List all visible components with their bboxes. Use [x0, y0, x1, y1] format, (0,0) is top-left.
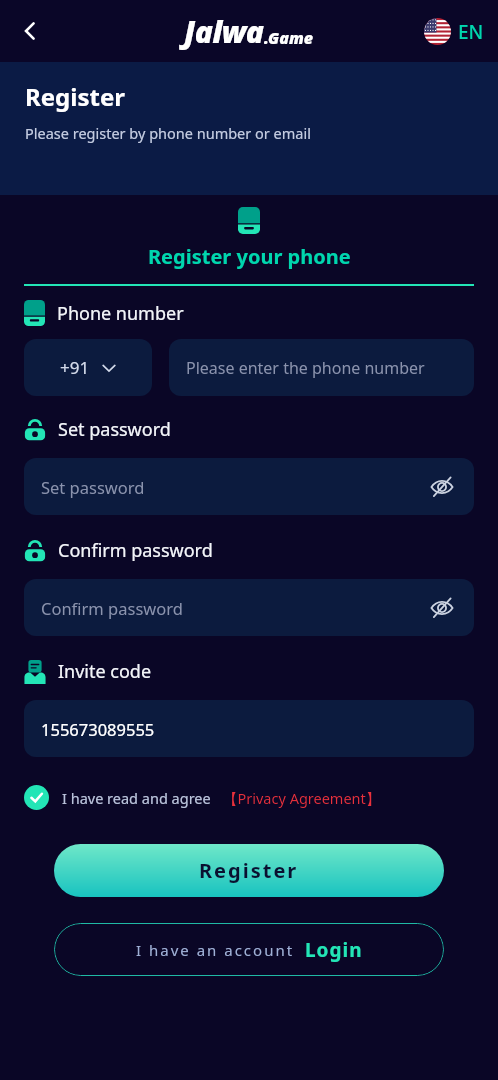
button[interactable]: EN	[424, 18, 484, 45]
button[interactable]: I have read and agree	[24, 785, 381, 810]
staticText: Confirm password	[41, 597, 183, 619]
staticText: Register	[25, 80, 125, 113]
staticText: Register	[199, 857, 299, 884]
staticText: Set password	[58, 417, 171, 442]
button[interactable]: Toggle password visibility	[427, 472, 457, 502]
button[interactable]: Please enter the phone number	[169, 339, 474, 396]
button[interactable]: I have an account	[54, 923, 444, 976]
button[interactable]: Confirm password	[24, 579, 474, 636]
staticText: I have read and agree	[62, 788, 211, 808]
staticText: Login	[305, 937, 363, 963]
staticText: Register your phone	[148, 243, 351, 270]
staticText: Please register by phone number or email	[25, 123, 311, 143]
staticText: EN	[458, 19, 484, 45]
staticText: Phone number	[57, 301, 184, 326]
staticText: 155673089555	[41, 718, 155, 740]
staticText: Confirm password	[58, 538, 213, 563]
staticText: Invite code	[58, 659, 152, 684]
button[interactable]: Register	[54, 844, 444, 897]
staticText: Please enter the phone number	[186, 357, 425, 379]
staticText: .Game	[264, 27, 314, 49]
button[interactable]: Set password	[24, 458, 474, 515]
button[interactable]: 155673089555	[24, 700, 474, 757]
staticText: Jalwa	[184, 11, 264, 52]
staticText: I have an account	[136, 940, 295, 960]
button[interactable]: +91	[24, 339, 152, 396]
staticText: Set password	[41, 476, 145, 498]
staticText: +91	[60, 356, 90, 379]
button[interactable]: Toggle password visibility	[427, 593, 457, 623]
button[interactable]: Back	[8, 9, 52, 53]
staticText: 【Privacy Agreement】	[223, 788, 381, 808]
